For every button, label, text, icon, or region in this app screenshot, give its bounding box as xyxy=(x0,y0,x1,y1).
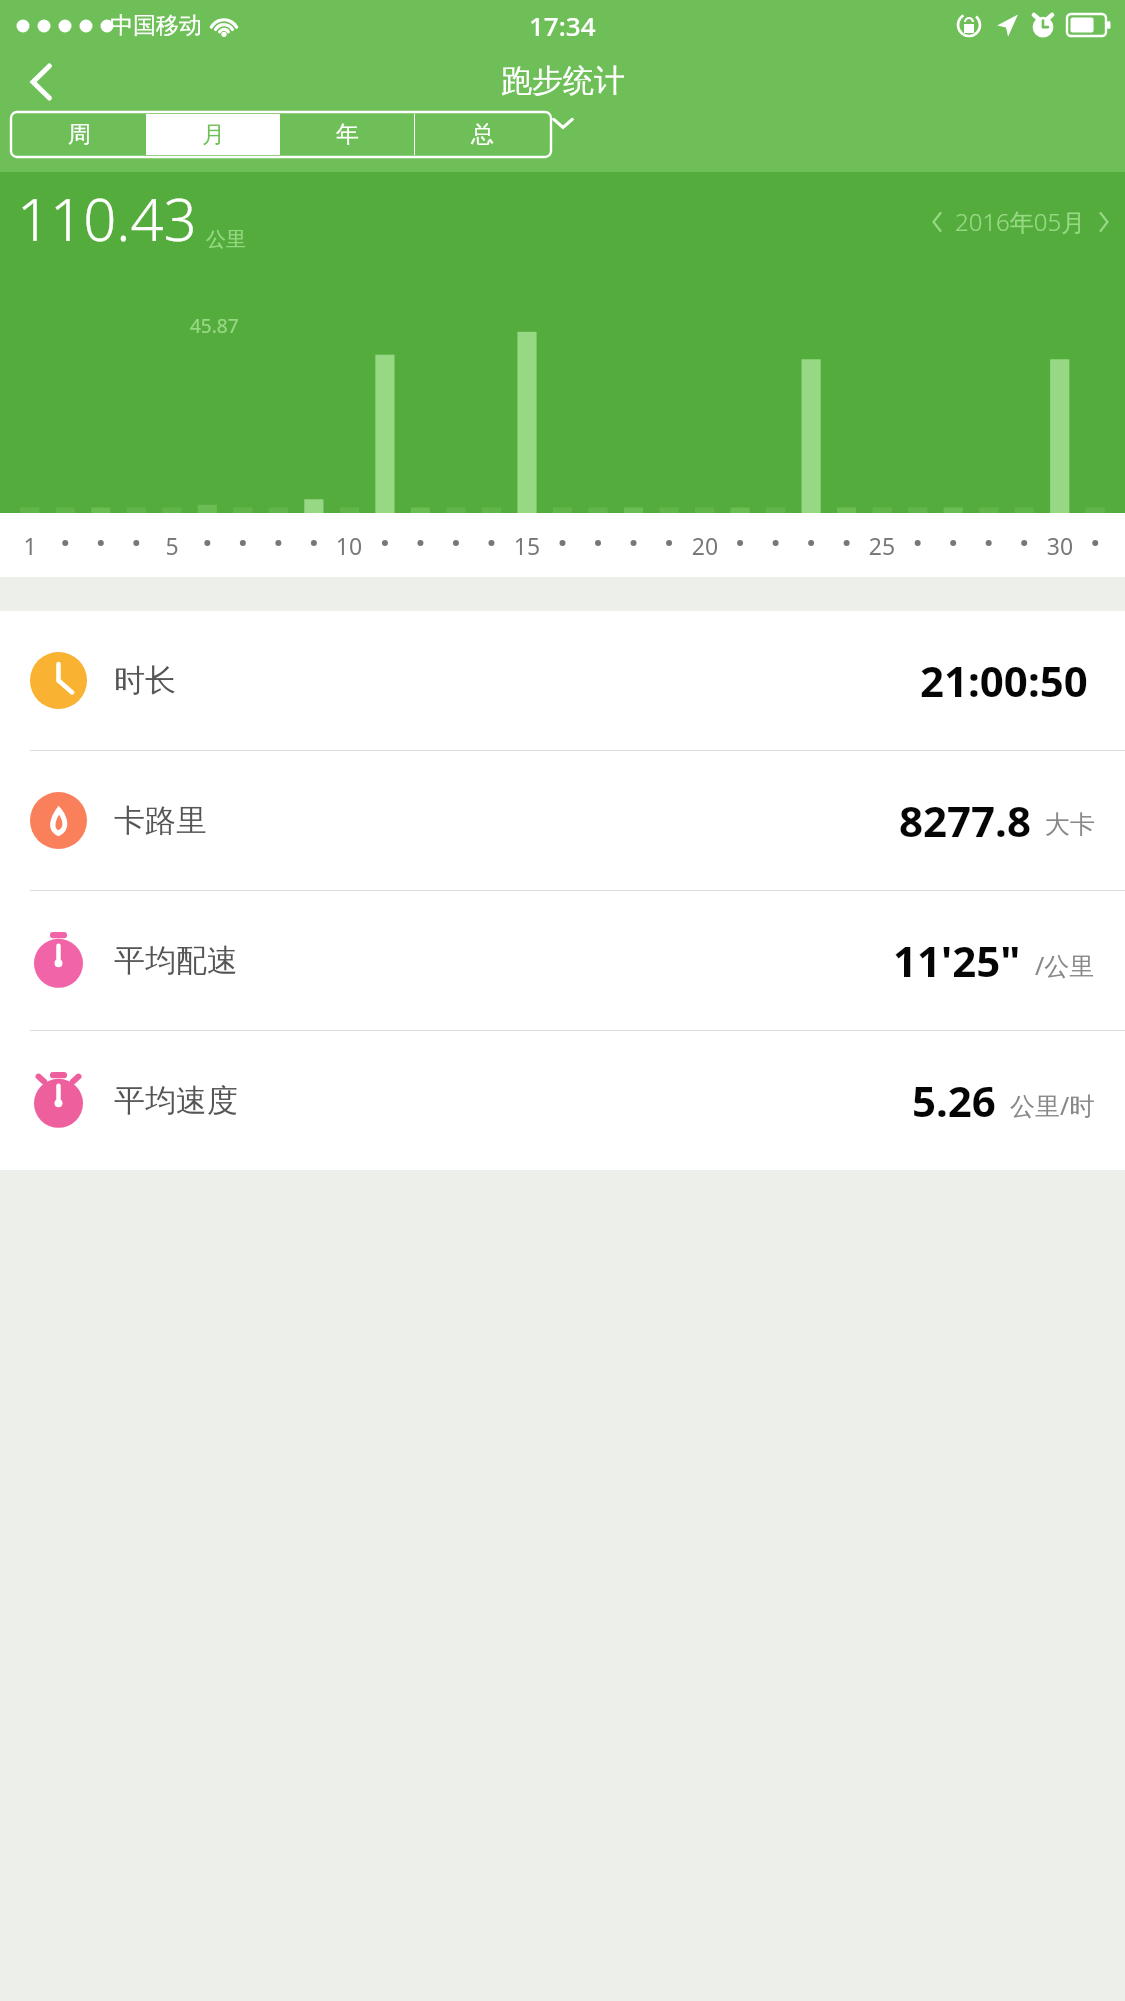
staticText: 大卡 xyxy=(1045,809,1095,840)
button[interactable]: 2016年05月 xyxy=(932,205,1109,238)
staticText: 月 xyxy=(202,120,225,149)
button[interactable]: 卡路里 xyxy=(0,751,1125,890)
staticText: 21:00:50 xyxy=(920,652,1088,709)
staticText: 跑步统计 xyxy=(501,61,625,100)
staticText: 时长 xyxy=(114,661,176,700)
staticText: 30 xyxy=(1042,530,1078,561)
staticText: 公里/时 xyxy=(1010,1088,1095,1122)
staticText: 年 xyxy=(336,120,359,149)
staticText: 17:34 xyxy=(529,8,596,43)
staticText: 卡路里 xyxy=(114,801,207,840)
button[interactable]: 平均配速 xyxy=(0,891,1125,1030)
button[interactable]: Back xyxy=(12,53,70,111)
button[interactable]: 时长 xyxy=(0,611,1125,750)
staticText: 110.43 xyxy=(17,179,197,258)
staticText: /公里 xyxy=(1035,948,1095,982)
button[interactable]: 平均速度 xyxy=(0,1031,1125,1170)
staticText: 8277.8 xyxy=(899,792,1031,849)
staticText: 1 xyxy=(12,530,48,561)
staticText: 45.87 xyxy=(190,313,239,339)
staticText: 周 xyxy=(68,120,91,149)
button[interactable]: 周 xyxy=(13,114,146,155)
button[interactable]: 月 xyxy=(146,114,280,155)
staticText: 平均速度 xyxy=(114,1081,238,1120)
staticText: 2016年05月 xyxy=(955,205,1086,238)
staticText: 总 xyxy=(471,120,494,149)
staticText: 公里 xyxy=(206,227,246,252)
staticText: 平均配速 xyxy=(114,941,238,980)
staticText: 中国移动 xyxy=(110,11,202,40)
button[interactable]: 年 xyxy=(280,114,414,155)
staticText: 5 xyxy=(154,530,190,561)
button[interactable]: 总 xyxy=(415,114,549,155)
staticText: 10 xyxy=(331,530,367,561)
staticText: 25 xyxy=(864,530,900,561)
staticText: 11'25" xyxy=(893,932,1021,989)
staticText: 15 xyxy=(509,530,545,561)
staticText: 20 xyxy=(687,530,723,561)
button[interactable]: Expand xyxy=(552,117,574,130)
staticText: 5.26 xyxy=(912,1072,996,1129)
